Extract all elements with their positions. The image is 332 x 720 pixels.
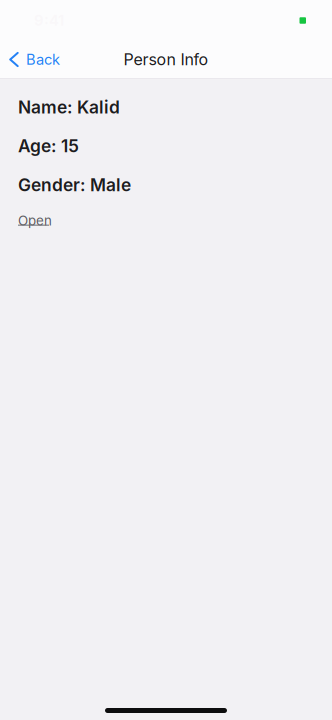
staticText: Gender: Male: [18, 174, 131, 195]
button[interactable]: Back: [0, 44, 68, 75]
button[interactable]: Open: [18, 195, 52, 229]
staticText: Person Info: [123, 50, 208, 69]
staticText: Age: 15: [18, 136, 79, 157]
staticText: Name: Kalid: [18, 97, 120, 118]
staticText: Back: [26, 51, 60, 68]
staticText: Open: [18, 212, 52, 229]
